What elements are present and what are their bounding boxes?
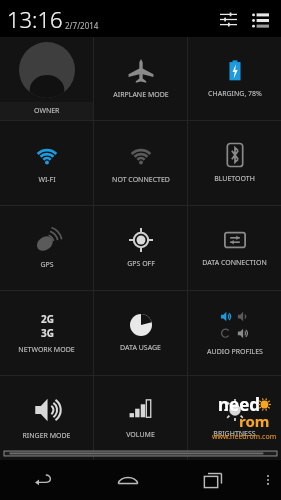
staticText: OWNER xyxy=(34,106,60,116)
button[interactable]: OWNER xyxy=(0,37,93,120)
staticText: NOT CONNECTED xyxy=(112,175,170,185)
staticText: BLUETOOTH xyxy=(214,174,255,184)
button[interactable]: VOLUME xyxy=(94,376,187,460)
staticText: 13:16 xyxy=(7,4,63,34)
button[interactable]: GPS xyxy=(0,206,93,290)
button[interactable]: Recent apps xyxy=(170,460,255,500)
staticText: AUDIO PROFILES xyxy=(207,347,263,357)
staticText: GPS OFF xyxy=(127,259,155,269)
button[interactable]: Notifications list xyxy=(247,6,273,32)
staticText: www.needrom.com xyxy=(212,432,277,442)
staticText: WI-FI xyxy=(38,175,56,185)
staticText: 3G xyxy=(41,326,54,338)
button[interactable]: BLUETOOTH xyxy=(188,121,281,205)
staticText: RINGER MODE xyxy=(22,431,71,441)
button[interactable]: BRIGHTNESS xyxy=(188,376,281,460)
staticText: DATA USAGE xyxy=(120,343,161,353)
button[interactable]: Back xyxy=(0,460,85,500)
button[interactable]: Settings xyxy=(215,6,241,32)
button[interactable]: AUDIO PROFILES xyxy=(188,291,281,375)
button[interactable]: 2G xyxy=(0,291,93,375)
button[interactable]: NOT CONNECTED xyxy=(94,121,187,205)
staticText: NETWORK MODE xyxy=(18,345,75,355)
staticText: 2G xyxy=(41,312,54,326)
staticText: BRIGHTNESS xyxy=(213,429,256,439)
button[interactable]: Home xyxy=(85,460,170,500)
staticText: GPS xyxy=(40,260,54,270)
staticText: AIRPLANE MODE xyxy=(113,90,169,100)
button[interactable]: RINGER MODE xyxy=(0,376,93,460)
button[interactable]: WI-FI xyxy=(0,121,93,205)
button[interactable]: DATA CONNECTION xyxy=(188,206,281,290)
staticText: rom xyxy=(239,411,270,431)
staticText: CHARGING, 78% xyxy=(208,89,262,99)
button[interactable]: CHARGING, 78% xyxy=(188,37,281,120)
staticText: need xyxy=(218,393,261,416)
button[interactable]: AIRPLANE MODE xyxy=(94,37,187,120)
staticText: DATA CONNECTION xyxy=(202,258,267,268)
staticText: 2/7/2014 xyxy=(65,20,99,31)
staticText: VOLUME xyxy=(126,430,155,440)
button[interactable]: DATA USAGE xyxy=(94,291,187,375)
button[interactable]: GPS OFF xyxy=(94,206,187,290)
button[interactable]: More options xyxy=(255,460,281,500)
